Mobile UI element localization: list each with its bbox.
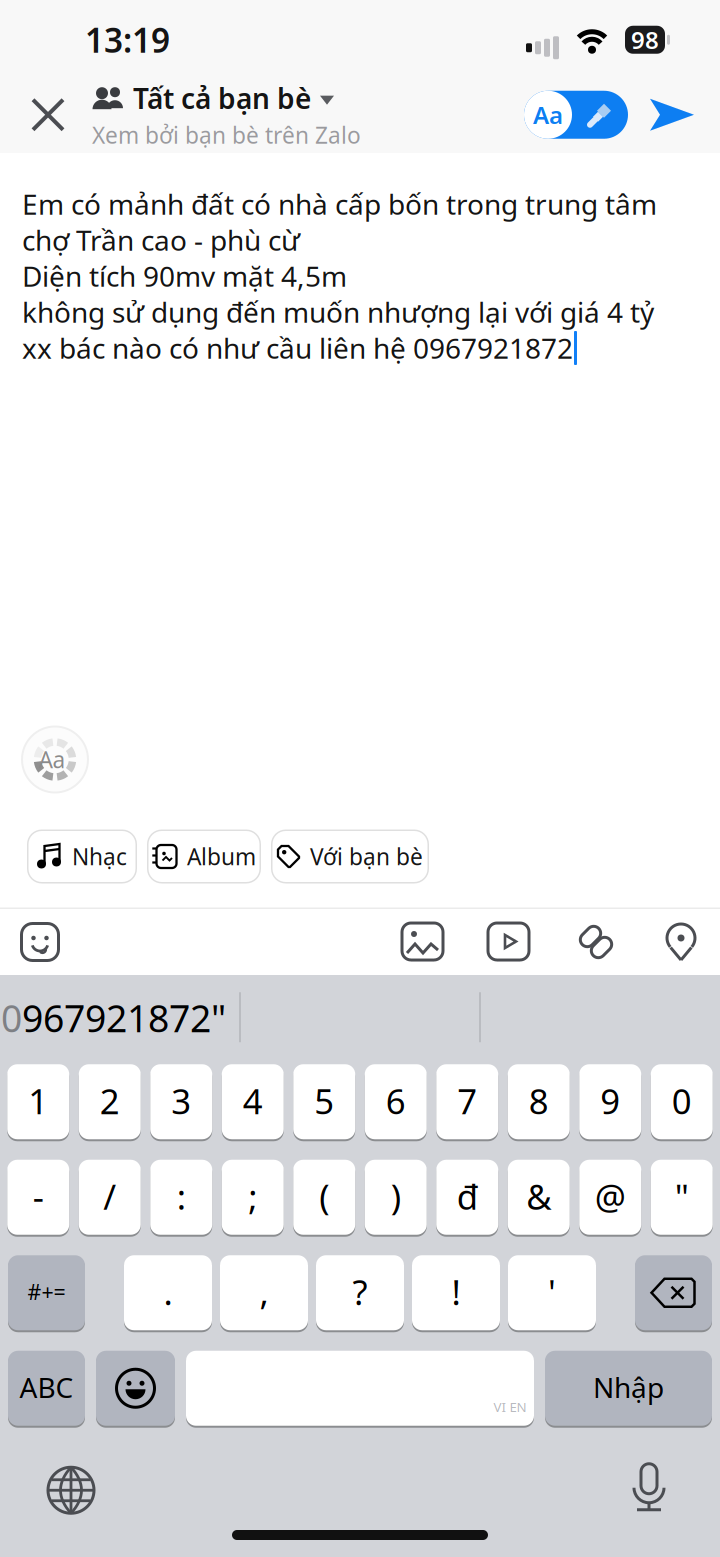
button[interactable]: Dictation [632,1464,666,1512]
staticText: 13:19 [85,18,170,62]
staticText: Nhập [593,1369,664,1406]
button[interactable]: ABC [8,1350,85,1427]
staticText: 2 [100,1078,120,1124]
staticText: 0 [1,993,22,1043]
button[interactable]: Stickers [0,923,59,961]
staticText: 967921872" [22,993,226,1043]
staticText: 5 [314,1078,334,1124]
button[interactable]: Photo [402,923,444,961]
button[interactable]: Close [18,85,78,145]
staticText: ABC [19,1369,73,1406]
staticText: Aa [38,744,65,774]
staticText: ( [319,1173,329,1219]
button[interactable]: 7 [436,1063,498,1140]
button[interactable]: Delete [635,1254,712,1331]
button[interactable]: . [124,1254,212,1331]
button[interactable]: 6 [365,1063,427,1140]
button[interactable]: ( [293,1159,355,1236]
button[interactable]: ? [316,1254,404,1331]
staticText: ? [352,1269,367,1315]
staticText: 98 [631,24,659,56]
button[interactable]: Emoji [96,1350,175,1427]
button[interactable]: Text background [22,726,88,792]
button[interactable]: Với bạn bè [271,829,429,883]
button[interactable]: Send [628,95,720,135]
staticText: đ [457,1173,478,1219]
button[interactable]: , [220,1254,308,1331]
staticText: 6 [386,1078,406,1124]
staticText: Với bạn bè [310,841,423,871]
button[interactable]: Nhạc [27,829,137,883]
staticText: VI EN [493,1398,526,1416]
button[interactable]: " [651,1159,713,1236]
staticText: & [526,1173,551,1219]
button[interactable]: Space [186,1350,534,1427]
button[interactable]: ) [365,1159,427,1236]
button[interactable]: 3 [150,1063,212,1140]
button[interactable]: : [150,1159,212,1236]
staticText: Album [187,841,256,871]
button[interactable]: Next keyboard [47,1466,95,1514]
staticText: : [177,1173,186,1219]
staticText: ; [248,1173,257,1219]
button[interactable]: / [79,1159,141,1236]
button[interactable]: ' [508,1254,596,1331]
staticText: 8 [529,1078,549,1124]
button[interactable]: đ [436,1159,498,1236]
button[interactable]: Location [616,923,720,961]
button[interactable]: Tất cả bạn bè [78,80,361,150]
button[interactable]: - [7,1159,69,1236]
staticText: không sử dụng đến muốn nhượng lại với gi… [22,293,654,331]
staticText: Tất cả bạn bè [133,80,311,117]
staticText: Nhạc [72,841,127,871]
staticText: chợ Trần cao - phù cừ [22,221,300,259]
staticText: / [103,1173,116,1219]
staticText: 7 [457,1078,477,1124]
button[interactable]: Video [444,923,530,961]
staticText: 9 [600,1078,620,1124]
staticText: ' [548,1269,556,1315]
staticText: 4 [243,1078,263,1124]
button[interactable]: ; [222,1159,284,1236]
button[interactable]: Album [147,829,261,883]
staticText: Diện tích 90mv mặt 4,5m [22,257,347,295]
staticText: Em có mảnh đất có nhà cấp bốn trong trun… [22,185,657,223]
staticText: Aa [533,99,563,131]
button[interactable]: 4 [222,1063,284,1140]
staticText: , [259,1269,268,1315]
staticText: - [33,1173,44,1219]
staticText: " [675,1173,689,1219]
button[interactable]: Link [530,922,616,962]
staticText: #+= [27,1278,65,1306]
button[interactable]: Nhập [545,1350,712,1427]
staticText: ! [451,1269,460,1315]
button[interactable]: & [508,1159,570,1236]
staticText: @ [595,1173,626,1219]
staticText: ) [391,1173,401,1219]
staticText: . [163,1269,172,1315]
button[interactable]: 0 [651,1063,713,1140]
staticText: 1 [28,1078,48,1124]
button[interactable]: 9 [579,1063,641,1140]
staticText: xx bác nào có như cầu liên hệ 0967921872 [22,329,573,367]
button[interactable]: #+= [8,1254,85,1331]
button[interactable]: Text style [524,91,628,139]
button[interactable]: 8 [508,1063,570,1140]
button[interactable]: @ [579,1159,641,1236]
button[interactable]: ! [412,1254,500,1331]
button[interactable]: 2 [79,1063,141,1140]
staticText: 0 [672,1078,692,1124]
staticText: 3 [171,1078,191,1124]
button[interactable]: 1 [7,1063,69,1140]
button[interactable]: 0 [0,975,238,1060]
staticText: Xem bởi bạn bè trên Zalo [92,120,361,150]
button[interactable]: 5 [293,1063,355,1140]
